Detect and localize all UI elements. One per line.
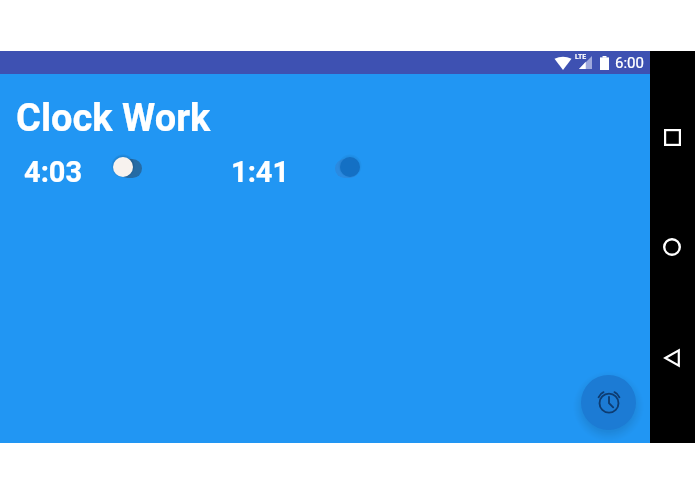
staticText: Clock Work bbox=[16, 96, 211, 141]
button[interactable]: Home bbox=[656, 231, 688, 263]
button[interactable]: Alarm disabled bbox=[103, 151, 151, 183]
button[interactable]: Alarm enabled bbox=[320, 151, 368, 183]
button[interactable]: Add alarm bbox=[581, 375, 636, 430]
staticText: LTE bbox=[575, 53, 587, 61]
button[interactable]: Recent apps bbox=[656, 121, 688, 153]
button[interactable]: Back bbox=[656, 342, 688, 374]
staticText: 6:00 bbox=[615, 54, 644, 72]
button[interactable]: 4:03 bbox=[24, 155, 83, 189]
staticText: 1:41 bbox=[231, 155, 290, 189]
staticText: 4:03 bbox=[24, 155, 83, 189]
button[interactable]: 1:41 bbox=[231, 155, 290, 189]
